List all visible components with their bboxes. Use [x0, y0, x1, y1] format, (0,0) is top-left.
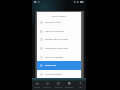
button[interactable]: One-key uninstall [37, 27, 81, 36]
button[interactable]: Backup [53, 81, 64, 90]
staticText: Home [34, 86, 40, 89]
staticText: One-key uninstall [45, 30, 64, 33]
staticText: One-key install [45, 21, 61, 24]
staticText: Discover [43, 86, 52, 89]
button[interactable]: Startup Manager [37, 53, 81, 62]
staticText: Startup Manager [45, 56, 64, 59]
staticText: Backup [55, 86, 63, 89]
button[interactable]: Manage [64, 81, 75, 90]
staticText: Root Captain [52, 14, 67, 17]
button[interactable]: Block SMS [37, 61, 81, 70]
button[interactable]: Discover [42, 81, 53, 90]
staticText: Block SMS [45, 64, 57, 67]
staticText: Manage [65, 86, 74, 89]
staticText: Me [79, 86, 83, 89]
button[interactable]: Uninstall system app [37, 44, 81, 53]
staticText: App Permission [45, 73, 62, 76]
button[interactable]: App Permission [37, 70, 81, 79]
staticText: Uninstall system app [45, 47, 68, 50]
button[interactable]: Backup app and data [37, 35, 81, 44]
button[interactable]: Home [32, 81, 42, 90]
button[interactable]: Me [75, 81, 86, 90]
staticText: Backup app and data [45, 38, 68, 41]
button[interactable]: One-key install [37, 18, 81, 27]
